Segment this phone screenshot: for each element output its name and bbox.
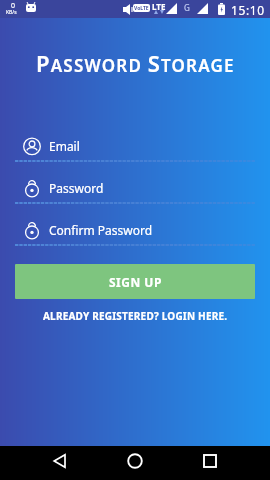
button[interactable]: Password bbox=[15, 176, 255, 204]
staticText: SIGN UP bbox=[109, 274, 162, 290]
staticText: 0 bbox=[11, 1, 16, 11]
staticText: LTE bbox=[152, 1, 166, 12]
staticText: Confirm Password bbox=[49, 222, 153, 238]
button[interactable]: ALREADY REGISTERED? LOGIN HERE. bbox=[43, 309, 228, 323]
button[interactable] bbox=[36, 446, 84, 480]
staticText: PASSWORD STORAGE bbox=[36, 48, 235, 78]
button[interactable] bbox=[186, 446, 234, 480]
button[interactable]: Email bbox=[15, 134, 255, 162]
staticText: 15:10 bbox=[231, 2, 265, 18]
staticText: Email bbox=[49, 138, 80, 154]
staticText: KB/s bbox=[6, 9, 17, 16]
button[interactable]: SIGN UP bbox=[15, 264, 255, 299]
staticText: G bbox=[184, 2, 190, 13]
staticText: ALREADY REGISTERED? LOGIN HERE. bbox=[43, 309, 228, 323]
button[interactable] bbox=[111, 446, 159, 480]
button[interactable]: Confirm Password bbox=[15, 218, 255, 246]
staticText: Password bbox=[49, 180, 104, 196]
staticText: VoLTE bbox=[134, 5, 149, 12]
